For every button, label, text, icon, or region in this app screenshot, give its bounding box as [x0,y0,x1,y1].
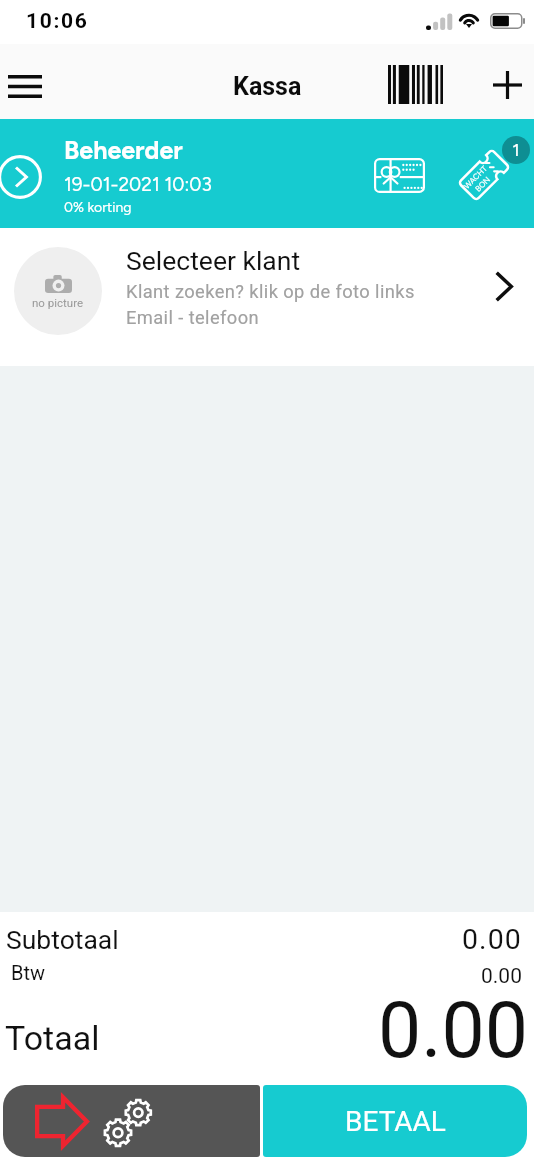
staticText: Klant zoeken? klik op de foto links [126,281,415,302]
button[interactable]: Settings [3,1085,260,1157]
button[interactable]: Gift card [366,150,433,201]
staticText: 0.00 [481,964,522,989]
button[interactable]: BETAAL [263,1085,527,1157]
staticText: Totaal [5,1018,100,1058]
button[interactable]: Open register [0,155,42,199]
button[interactable]: no picture [0,228,534,366]
staticText: 0.00 [378,986,529,1076]
staticText: 10:06 [26,9,89,34]
staticText: BON [473,174,493,194]
staticText: BETAAL [345,1105,446,1138]
button[interactable]: Wacht bon [450,141,518,209]
staticText: 1 [512,139,520,161]
staticText: 0.00 [462,923,522,956]
button[interactable]: Menu [0,56,51,116]
staticText: 19-01-2021 10:03 [64,173,212,196]
staticText: WACHT [461,163,489,191]
staticText: Email - telefoon [126,307,260,328]
button[interactable]: Add [477,55,534,115]
staticText: Subtotaal [6,924,119,955]
button[interactable]: Scan barcode [380,57,451,112]
button[interactable]: Beheerder [64,135,212,216]
staticText: Btw [11,961,46,984]
staticText: Kassa [233,72,302,101]
staticText: Beheerder [64,135,183,165]
staticText: 0% korting [64,199,132,216]
staticText: no picture [32,296,84,309]
staticText: Selecteer klant [126,245,301,276]
